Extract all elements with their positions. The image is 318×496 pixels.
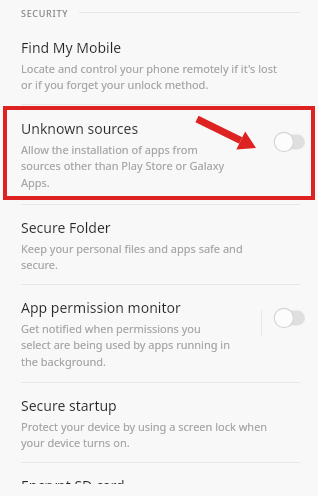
staticText: Get notified when permissions you select… (21, 321, 230, 369)
staticText: Locate and control your phone remotely i… (21, 61, 277, 92)
staticText: Find My Mobile (21, 38, 122, 57)
button[interactable]: Secure Folder (0, 205, 318, 284)
staticText: Allow the installation of apps from sour… (21, 142, 225, 190)
button[interactable]: Encrypt SD card (0, 463, 318, 496)
staticText: Protect your device by using a screen lo… (21, 419, 268, 450)
button[interactable]: Find My Mobile (0, 25, 318, 104)
staticText: SECURITY (21, 7, 69, 19)
button[interactable]: Unknown sources (0, 105, 318, 204)
staticText: Encrypt SD card (21, 476, 125, 484)
button[interactable]: App permission monitor toggle, off (262, 304, 308, 332)
staticText: Unknown sources (21, 119, 139, 138)
staticText: Keep your personal files and apps safe a… (21, 241, 243, 272)
staticText: Secure Folder (21, 218, 111, 237)
button[interactable]: App permission monitor (0, 285, 318, 382)
button[interactable]: Unknown sources toggle, off (262, 128, 308, 156)
staticText: Secure startup (21, 396, 117, 415)
button[interactable]: Secure startup (0, 383, 318, 462)
staticText: App permission monitor (21, 298, 181, 317)
